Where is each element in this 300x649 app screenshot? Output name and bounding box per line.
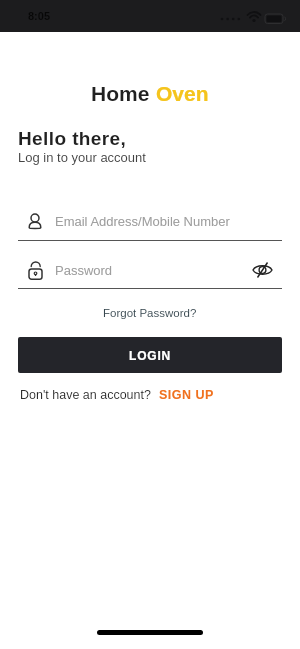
staticText: Forgot Password? [103, 307, 197, 320]
button[interactable]: Email Address/Mobile Number [0, 206, 300, 236]
button[interactable]: Forgot Password? [99, 303, 201, 324]
button[interactable]: SIGN UP [159, 388, 214, 402]
staticText: Hello there, [18, 128, 127, 149]
staticText: SIGN UP [159, 388, 214, 402]
staticText: 8:05 [28, 10, 51, 22]
staticText: Don't have an account? [20, 388, 151, 402]
staticText: Home [91, 82, 156, 105]
staticText: Password [55, 263, 113, 278]
button[interactable] [252, 261, 274, 279]
staticText: Oven [156, 82, 209, 105]
button[interactable]: LOGIN [18, 337, 282, 373]
button[interactable]: Password [0, 255, 300, 285]
staticText: LOGIN [129, 349, 171, 362]
staticText: Email Address/Mobile Number [55, 214, 230, 229]
staticText: Log in to your account [18, 150, 146, 165]
